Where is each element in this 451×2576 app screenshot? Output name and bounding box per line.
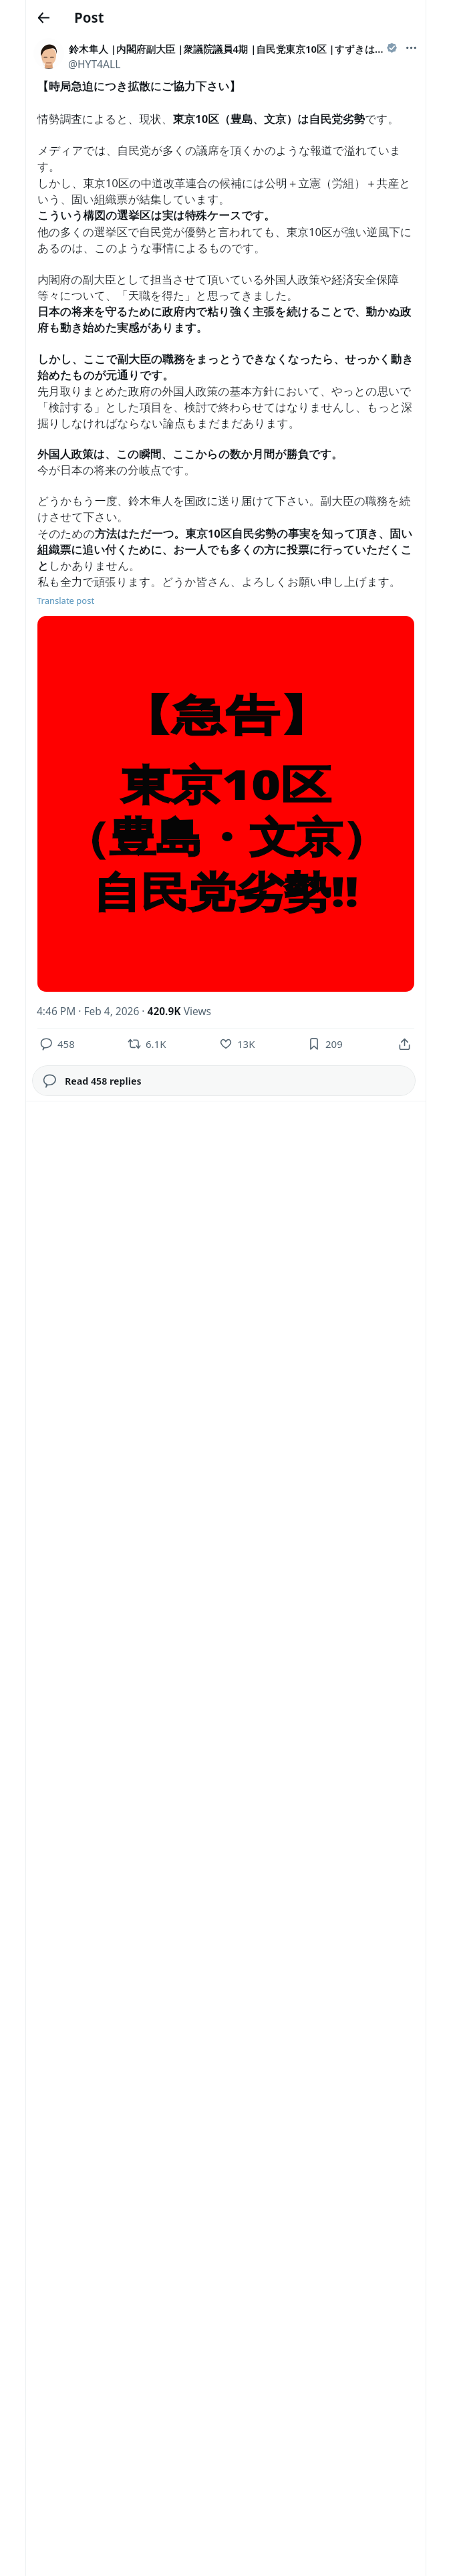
button[interactable]: Profile photo (33, 38, 64, 69)
staticText: 209 (325, 1037, 343, 1051)
staticText: 東京10区 (121, 756, 332, 813)
button[interactable]: More options (402, 39, 420, 56)
button[interactable]: Back (29, 3, 58, 32)
staticText: @HYT4ALL (68, 57, 121, 71)
staticText: Read 458 replies (65, 1075, 142, 1087)
staticText: （豊島・文京） (63, 812, 389, 864)
button[interactable]: 6.1K (127, 1032, 168, 1056)
staticText: 6.1K (146, 1037, 166, 1051)
staticText: 自民党劣勢!! (93, 863, 359, 920)
staticText: 情勢調査によると、現状、東京10区（豊島、文京）は自民党劣勢です。 (37, 111, 400, 126)
staticText: Translate post (37, 595, 95, 607)
staticText: 鈴木隼人 |内閣府副大臣 |衆議院議員4期 |自民党東京10区 |すずきは… (69, 42, 384, 56)
button[interactable]: Read 458 replies (32, 1065, 416, 1096)
button[interactable]: Post image (37, 616, 414, 992)
staticText: どうかもう一度、鈴木隼人を国政に送り届けて下さい。副大臣の職務を続 けさせて下さ… (37, 494, 413, 589)
button[interactable]: Translate post (37, 595, 95, 607)
staticText: 458 (57, 1037, 75, 1051)
button[interactable]: 13K (218, 1032, 257, 1056)
staticText: しかし、ここで副大臣の職務をまっとうできなくなったら、せっかく動き 始めたものが… (37, 352, 414, 431)
button[interactable]: 458 (39, 1032, 76, 1056)
staticText: メディアでは、自民党が多くの議席を頂くかのような報道で溢れていま す。 しかし、… (37, 144, 412, 255)
staticText: 内閣府の副大臣として担当させて頂いている外国人政策や経済安全保障 等々について、… (37, 273, 412, 335)
staticText: 外国人政策は、この瞬間、ここからの数か月間が勝負です。 今が日本の将来の分岐点で… (37, 447, 343, 477)
button[interactable]: Share (395, 1035, 414, 1053)
button[interactable]: 209 (307, 1032, 344, 1056)
staticText: 【急告】 (119, 689, 333, 742)
staticText: 13K (237, 1037, 255, 1051)
staticText: 4:46 PM · Feb 4, 2026 · 420.9K Views (37, 1004, 211, 1018)
staticText: 【時局急迫につき拡散にご協力下さい】 (37, 80, 241, 94)
staticText: Post (74, 8, 104, 27)
